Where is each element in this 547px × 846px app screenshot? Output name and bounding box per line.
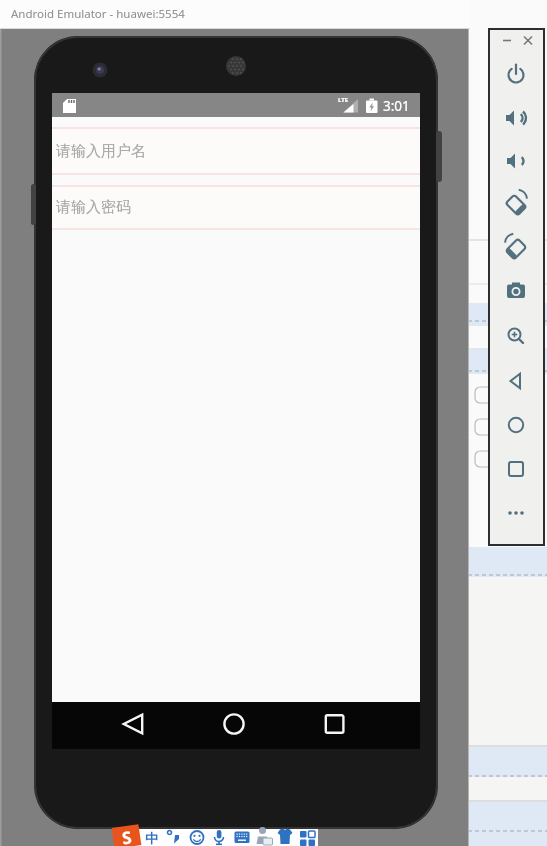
- button[interactable]: [214, 705, 254, 745]
- button[interactable]: [498, 100, 534, 136]
- staticText: S: [121, 825, 133, 846]
- button[interactable]: [498, 318, 534, 354]
- button[interactable]: [498, 273, 534, 309]
- button[interactable]: [256, 829, 274, 846]
- button[interactable]: 中: [145, 830, 158, 846]
- button[interactable]: [233, 829, 251, 846]
- button[interactable]: [498, 363, 534, 399]
- button[interactable]: [498, 407, 534, 443]
- button[interactable]: [494, 33, 509, 48]
- button[interactable]: [298, 829, 316, 846]
- button[interactable]: [210, 829, 228, 846]
- button[interactable]: [498, 495, 534, 531]
- button[interactable]: [276, 829, 294, 846]
- staticText: LTE: [338, 96, 349, 104]
- button[interactable]: [314, 705, 354, 745]
- button[interactable]: 请输入用户名: [52, 128, 420, 174]
- button[interactable]: [498, 230, 534, 266]
- staticText: Android Emulator - huawei:5554: [11, 6, 185, 22]
- staticText: 3:01: [383, 97, 410, 115]
- button[interactable]: [498, 186, 534, 222]
- button[interactable]: [520, 33, 535, 48]
- button[interactable]: 请输入密码: [52, 186, 420, 229]
- staticText: 请输入密码: [56, 198, 131, 217]
- button[interactable]: [498, 57, 534, 93]
- staticText: 请输入用户名: [56, 142, 146, 161]
- button[interactable]: [164, 829, 182, 846]
- button[interactable]: [188, 829, 206, 846]
- button[interactable]: [498, 143, 534, 179]
- button[interactable]: S: [112, 824, 141, 846]
- button[interactable]: [498, 451, 534, 487]
- button[interactable]: [113, 705, 153, 745]
